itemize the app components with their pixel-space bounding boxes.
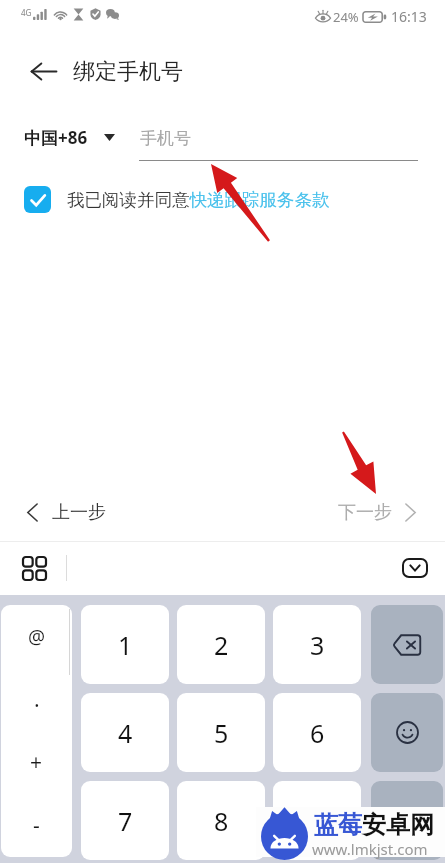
button[interactable]: 4 [81,693,169,772]
button[interactable]: 8 [177,781,265,860]
button[interactable]: Hide keyboard [398,551,432,585]
staticText: 4G [21,7,32,18]
button[interactable]: Emoji [371,693,443,772]
staticText: 下一步 [338,501,392,524]
button[interactable]: 1 [81,605,169,684]
staticText: 7 [118,804,133,838]
button[interactable]: 下一步 [338,501,416,524]
staticText: 中国+86 [24,126,88,149]
staticText: 9 [310,804,325,838]
staticText: 5 [214,716,229,750]
staticText: 绑定手机号 [73,58,183,86]
staticText: . [34,685,40,714]
button[interactable]: 中国+86 [24,126,115,149]
staticText: + [30,748,43,777]
button[interactable]: @ [1,605,72,668]
button[interactable]: Keyboard options [17,551,51,585]
staticText: - [33,811,40,840]
staticText: 4 [118,716,133,750]
button[interactable]: + [1,731,72,794]
button[interactable]: 3 [273,605,361,684]
staticText: @ [28,624,46,650]
button[interactable]: Back [22,50,64,92]
button[interactable]: 我已阅读并同意快递跟踪服务条款 [24,186,330,213]
button[interactable]: Delete [371,605,443,684]
staticText: 蓝莓 [314,810,362,840]
button[interactable]: 2 [177,605,265,684]
staticText: 我已阅读并同意快递跟踪服务条款 [67,189,330,211]
staticText: 上一步 [52,501,106,524]
button[interactable]: Space [371,781,443,860]
staticText: 手机号 [140,128,191,149]
staticText: 1 [118,628,133,662]
staticText: 6 [310,716,325,750]
staticText: 2 [214,628,229,662]
button[interactable]: . [1,668,72,731]
staticText: www.lmkjst.com [312,839,428,859]
button[interactable]: - [1,794,72,857]
staticText: 安卓网 [362,810,434,840]
button[interactable]: 6 [273,693,361,772]
staticText: 8 [214,804,229,838]
button[interactable]: 手机号 [139,118,418,161]
button[interactable]: 5 [177,693,265,772]
staticText: 24% [333,8,359,26]
button[interactable]: 7 [81,781,169,860]
button[interactable]: 9 [273,781,361,860]
staticText: 16:13 [391,7,427,26]
staticText: 3 [310,628,325,662]
button[interactable]: 上一步 [27,501,106,524]
